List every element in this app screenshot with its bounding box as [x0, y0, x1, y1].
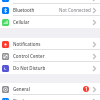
button[interactable]: Bluetooth: [0, 4, 100, 16]
staticText: Do Not Disturb: [13, 65, 46, 71]
button[interactable]: Cellular: [0, 16, 100, 28]
button[interactable]: Control Center: [0, 50, 100, 62]
button[interactable]: General: [0, 83, 100, 95]
staticText: Control Center: [13, 53, 45, 59]
staticText: General: [13, 86, 30, 92]
staticText: 1: [85, 86, 88, 92]
button[interactable]: Do Not Disturb: [0, 62, 100, 74]
staticText: Bluetooth: [13, 7, 35, 13]
staticText: Not Connected: [59, 7, 91, 13]
button[interactable]: Notifications: [0, 38, 100, 50]
button[interactable]: Wi-Fi: [0, 0, 100, 4]
staticText: Display: [13, 98, 29, 100]
button[interactable]: Display: [0, 95, 100, 100]
staticText: Notifications: [13, 41, 41, 47]
staticText: Cellular: [13, 19, 30, 25]
